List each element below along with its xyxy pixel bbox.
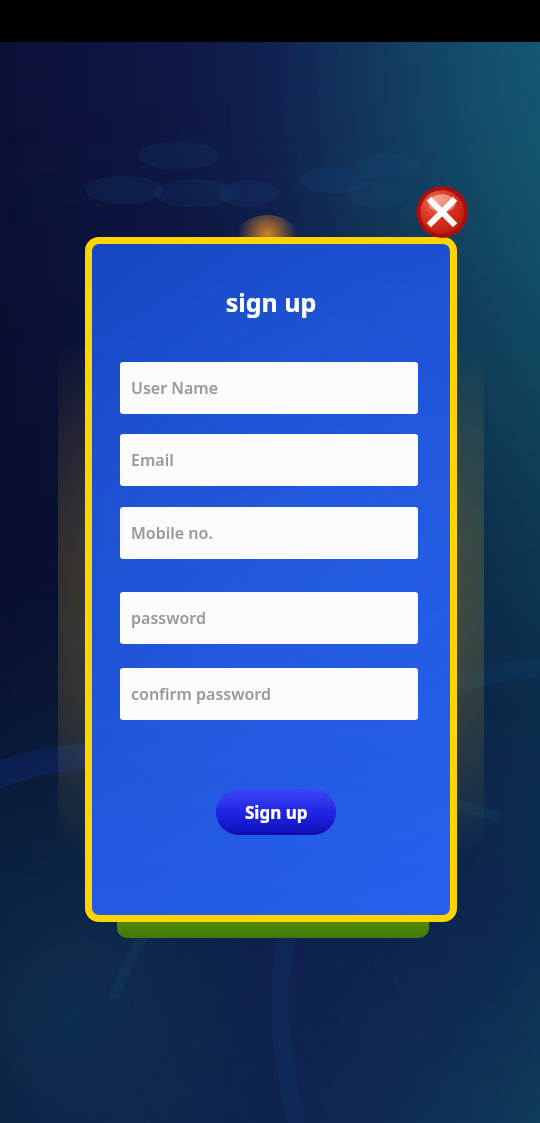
button[interactable]: Mobile no.: [120, 507, 418, 559]
button[interactable]: [117, 880, 429, 938]
staticText: Mobile no.: [131, 522, 213, 544]
staticText: Sign up: [245, 801, 308, 824]
button[interactable]: User Name: [120, 362, 418, 414]
staticText: Email: [131, 449, 174, 471]
button[interactable]: Close: [416, 186, 468, 238]
button[interactable]: password: [120, 592, 418, 644]
staticText: password: [131, 607, 206, 629]
button[interactable]: Email: [120, 434, 418, 486]
button[interactable]: Sign up: [216, 789, 336, 835]
staticText: User Name: [131, 377, 219, 399]
staticText: confirm password: [131, 683, 271, 705]
button[interactable]: confirm password: [120, 668, 418, 720]
staticText: sign up: [92, 285, 450, 319]
